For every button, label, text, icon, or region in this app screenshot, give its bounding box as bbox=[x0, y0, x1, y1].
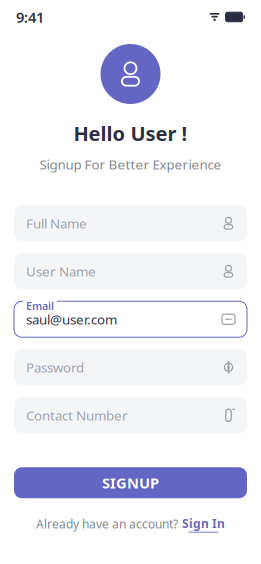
staticText: Password bbox=[26, 358, 84, 376]
button[interactable]: SIGNUP bbox=[14, 467, 247, 498]
staticText: Full Name bbox=[26, 214, 87, 232]
button[interactable]: Contact Number bbox=[14, 397, 247, 433]
staticText: SIGNUP bbox=[102, 473, 159, 492]
staticText: Email bbox=[26, 299, 54, 313]
staticText: User Name bbox=[26, 262, 96, 280]
staticText: 9:41 bbox=[16, 7, 44, 27]
staticText: saul@user.com bbox=[26, 310, 117, 328]
button[interactable]: User Name bbox=[14, 253, 247, 289]
staticText: Signup For Better Experience bbox=[39, 156, 221, 173]
staticText: Already have an account? bbox=[36, 516, 178, 532]
button[interactable]: Already have an account? bbox=[28, 511, 233, 537]
staticText: Contact Number bbox=[26, 406, 128, 424]
staticText: Sign In bbox=[182, 515, 225, 531]
button[interactable]: Password bbox=[14, 349, 247, 385]
staticText: Hello User ! bbox=[73, 120, 187, 147]
button[interactable]: saul@user.com bbox=[14, 301, 247, 337]
button[interactable]: Full Name bbox=[14, 205, 247, 241]
